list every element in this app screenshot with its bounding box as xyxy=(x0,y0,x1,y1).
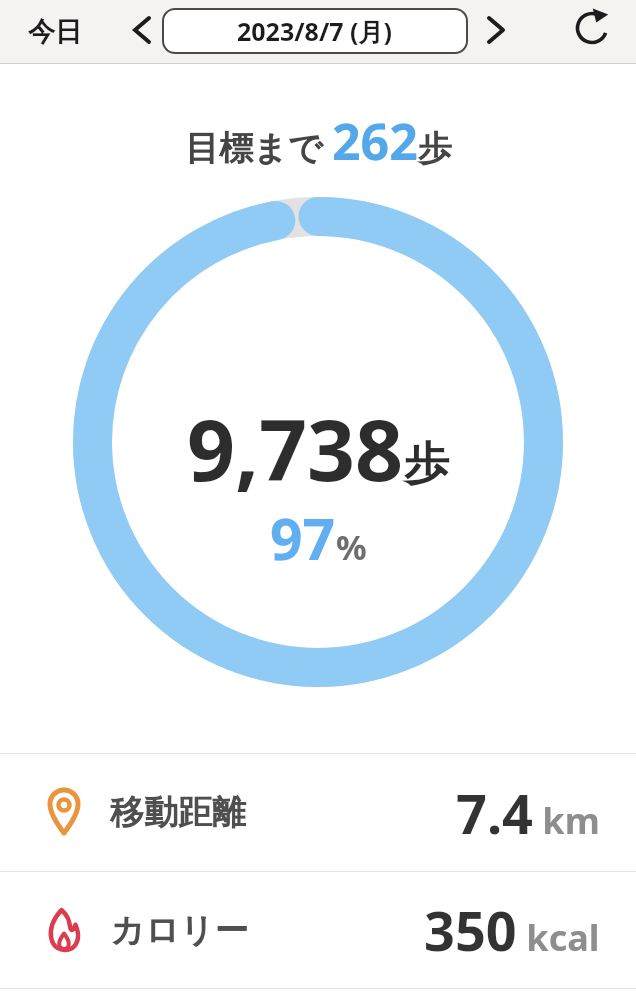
button[interactable] xyxy=(124,13,158,47)
staticText: 350 xyxy=(424,893,517,967)
button[interactable] xyxy=(570,6,614,50)
staticText: 目標まで xyxy=(185,124,332,170)
staticText: 97 xyxy=(270,499,336,577)
button[interactable]: 移動距離 xyxy=(0,754,636,871)
staticText: 歩 xyxy=(418,127,452,170)
staticText: kcal xyxy=(517,913,600,962)
staticText: 262 xyxy=(332,107,418,167)
staticText: 9,738 xyxy=(187,391,404,505)
button[interactable]: 今日 xyxy=(20,0,90,63)
staticText: km xyxy=(533,796,600,845)
button[interactable]: カロリー xyxy=(0,872,636,988)
staticText: % xyxy=(336,524,367,570)
staticText: 2023/8/7 (月) xyxy=(237,14,393,48)
staticText: カロリー xyxy=(110,909,249,952)
staticText: 歩 xyxy=(404,436,449,493)
button[interactable]: 2023/8/7 (月) xyxy=(162,8,468,54)
staticText: 今日 xyxy=(28,15,82,49)
staticText: 移動距離 xyxy=(110,791,246,834)
staticText: 7.4 xyxy=(456,776,533,850)
button[interactable] xyxy=(480,13,514,47)
